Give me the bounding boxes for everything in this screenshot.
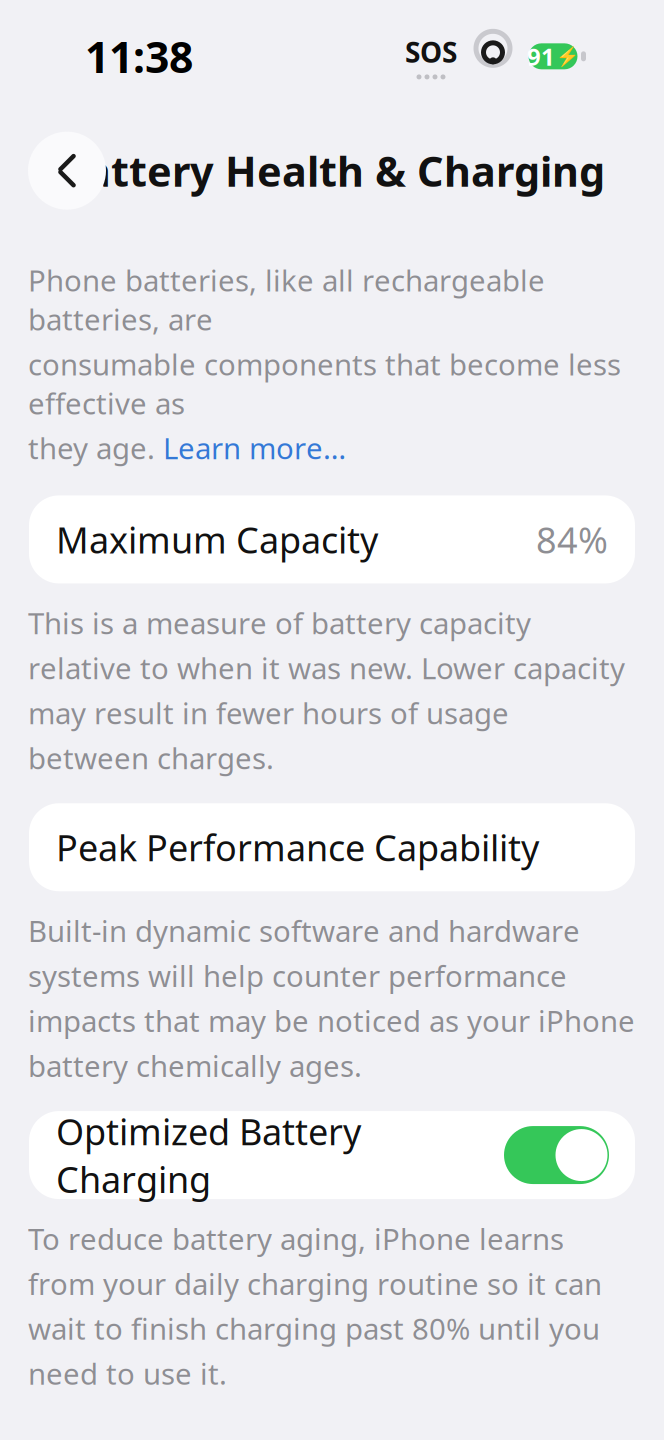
staticText: This is a measure of battery capacity re…: [28, 603, 625, 777]
staticText: 91: [527, 40, 555, 72]
staticText: Learn more…: [163, 428, 346, 467]
staticText: SOS: [405, 33, 457, 70]
staticText: 84%: [536, 515, 608, 563]
staticText: they age.: [28, 428, 163, 467]
staticText: Maximum Capacity: [56, 515, 378, 563]
staticText: ⚡: [556, 46, 579, 67]
staticText: 11:38: [85, 28, 193, 85]
button[interactable]: Peak Performance Capability: [29, 803, 635, 891]
staticText: Battery Health & Charging: [59, 143, 605, 198]
staticText: Peak Performance Capability: [56, 823, 539, 871]
button[interactable]: Maximum Capacity: [29, 495, 635, 583]
staticText: To reduce battery aging, iPhone learns f…: [28, 1219, 602, 1393]
staticText: consumable components that become less e…: [28, 345, 621, 422]
button[interactable]: Learn more…: [163, 428, 346, 467]
button[interactable]: Optimized Battery Charging: [29, 1111, 635, 1199]
staticText: Built-in dynamic software and hardware s…: [28, 911, 635, 1085]
button[interactable]: Back: [28, 132, 106, 210]
staticText: Optimized Battery Charging: [56, 1107, 361, 1203]
staticText: Phone batteries, like all rechargeable b…: [28, 261, 545, 339]
